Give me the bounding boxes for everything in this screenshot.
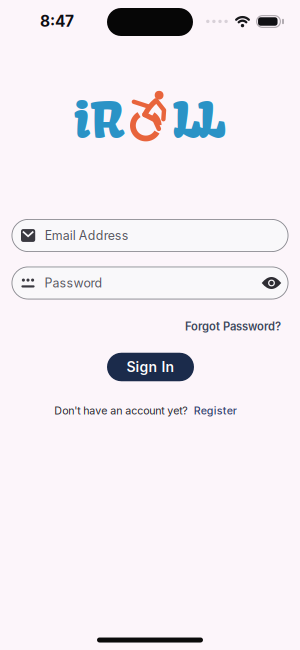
staticText: 8:47 xyxy=(40,12,74,30)
button[interactable]: Register xyxy=(194,404,237,417)
staticText: Forgot Password? xyxy=(185,320,281,333)
staticText: iR xyxy=(73,90,123,151)
button[interactable]: Password xyxy=(11,266,288,299)
staticText: Register xyxy=(194,404,237,417)
staticText: Email Address xyxy=(45,228,129,243)
staticText: Don't have an account yet? xyxy=(54,404,187,417)
button[interactable]: Forgot Password? xyxy=(185,320,281,333)
button[interactable]: Show Password xyxy=(259,273,283,293)
staticText: LL xyxy=(173,90,225,151)
button[interactable]: Email Address xyxy=(11,219,288,252)
staticText: Password xyxy=(44,275,102,290)
staticText: Sign In xyxy=(126,358,174,375)
button[interactable]: Sign In xyxy=(107,353,194,381)
